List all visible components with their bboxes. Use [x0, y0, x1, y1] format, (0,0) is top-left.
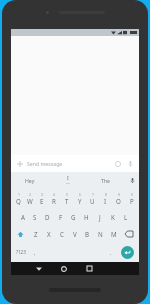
staticText: Y	[78, 197, 82, 205]
button[interactable]: N	[94, 225, 107, 243]
staticText: •••	[66, 182, 70, 186]
staticText: Q	[16, 197, 21, 205]
button[interactable]: G	[67, 208, 80, 225]
button[interactable]: 1	[12, 189, 24, 208]
staticText: F	[59, 213, 63, 221]
button[interactable]: 8	[99, 189, 112, 208]
staticText: L	[124, 213, 128, 221]
button[interactable]: 4	[48, 189, 60, 208]
button[interactable]: Recent apps	[80, 262, 98, 275]
staticText: I	[104, 197, 107, 205]
button[interactable]: The	[87, 172, 125, 188]
button[interactable]: ,	[29, 243, 41, 261]
button[interactable]: .	[105, 243, 117, 261]
staticText: .	[110, 249, 112, 256]
button[interactable]: Voice input	[125, 159, 135, 169]
staticText: Z	[34, 230, 38, 238]
button[interactable]: H	[80, 208, 93, 225]
staticText: M	[111, 230, 117, 238]
staticText: G	[71, 213, 76, 221]
staticText: K	[111, 213, 115, 221]
staticText: Send message	[27, 160, 113, 167]
staticText: H	[84, 213, 89, 221]
button[interactable]: 0	[125, 189, 138, 208]
button[interactable]: Add attachment	[15, 159, 24, 168]
staticText: X	[47, 230, 51, 238]
staticText: T	[65, 197, 69, 205]
button[interactable]: L	[119, 208, 132, 225]
button[interactable]: Z	[29, 225, 42, 243]
staticText: ?123	[16, 249, 26, 255]
staticText: C	[60, 230, 64, 238]
staticText: W	[27, 197, 33, 205]
button[interactable]: ?123	[12, 243, 29, 261]
staticText: O	[116, 197, 121, 205]
button[interactable]: 2	[24, 189, 36, 208]
staticText: A	[21, 213, 25, 221]
button[interactable]: Add attachment	[11, 155, 139, 172]
button[interactable]: 7	[86, 189, 99, 208]
staticText: 9	[118, 192, 120, 197]
staticText: 7	[92, 192, 94, 197]
staticText: 2	[29, 192, 31, 197]
staticText: 4	[53, 192, 55, 197]
button[interactable]: F	[54, 208, 67, 225]
button[interactable]: A	[17, 208, 29, 225]
button[interactable]: C	[55, 225, 68, 243]
button[interactable]: M	[107, 225, 120, 243]
staticText: Hey	[25, 177, 35, 184]
staticText: 3	[41, 192, 43, 197]
staticText: N	[98, 230, 103, 238]
button[interactable]: 9	[112, 189, 125, 208]
button[interactable]: Emoji	[113, 159, 123, 169]
button[interactable]: Hey	[11, 172, 49, 188]
staticText: U	[90, 197, 95, 205]
button[interactable]: Home	[55, 262, 73, 275]
button[interactable]: S	[29, 208, 41, 225]
staticText: S	[33, 213, 37, 221]
button[interactable]: Back	[30, 262, 48, 275]
staticText: D	[45, 213, 50, 221]
button[interactable]: B	[81, 225, 94, 243]
staticText: E	[40, 197, 44, 205]
staticText: 6	[79, 192, 81, 197]
button[interactable]: Shift	[12, 225, 29, 243]
button[interactable]: 3	[36, 189, 48, 208]
staticText: B	[85, 230, 90, 238]
button[interactable]: Enter	[117, 243, 138, 261]
button[interactable]: V	[68, 225, 81, 243]
button[interactable]: K	[106, 208, 119, 225]
staticText: I	[67, 174, 69, 181]
button[interactable]: J	[93, 208, 106, 225]
button[interactable]: 5	[60, 189, 73, 208]
staticText: 8	[105, 192, 107, 197]
staticText: The	[101, 177, 111, 184]
staticText: J	[99, 213, 101, 221]
button[interactable]: D	[41, 208, 54, 225]
staticText: 5	[66, 192, 68, 197]
staticText: 0	[131, 192, 133, 197]
staticText: ,	[34, 249, 36, 256]
button[interactable]: 6	[73, 189, 86, 208]
button[interactable]: Backspace	[120, 225, 138, 243]
staticText: R	[52, 197, 56, 205]
staticText: 1	[18, 192, 20, 197]
staticText: P	[130, 197, 134, 205]
staticText: V	[73, 230, 77, 238]
button[interactable]: Voice typing	[125, 172, 139, 188]
button[interactable]: X	[42, 225, 55, 243]
button[interactable]: I	[49, 172, 87, 188]
